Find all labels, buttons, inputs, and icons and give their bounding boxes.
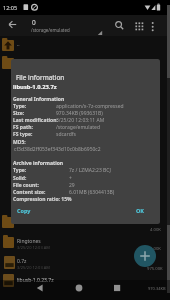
button[interactable] — [110, 17, 127, 34]
staticText: 0.7z — [17, 258, 27, 265]
staticText: Compression ratio: 15% — [13, 196, 72, 203]
staticText: cf3d38d2ff053ef343d10c0b8b6950c2 — [14, 146, 101, 153]
staticText: 29 — [69, 182, 75, 189]
staticText: 3/25/20 12:03:11 AM — [56, 117, 105, 124]
staticText: + — [69, 175, 72, 182]
staticText: Copy — [17, 207, 31, 214]
staticText: Last modification: — [13, 117, 58, 124]
staticText: 12:05 — [3, 4, 18, 11]
staticText: libusb-1.0.23.7z — [17, 277, 54, 284]
staticText: FS type: — [13, 131, 33, 138]
staticText: 0 — [32, 18, 36, 27]
button[interactable] — [0, 251, 163, 271]
staticText: File information — [16, 73, 65, 82]
staticText: Ringtones — [17, 238, 41, 245]
staticText: 3/25/20 12:03 AM — [17, 245, 50, 250]
staticText: .. — [17, 41, 20, 48]
staticText: /storage/emulated — [56, 124, 100, 131]
staticText: Content size: — [13, 189, 46, 196]
button[interactable] — [109, 282, 125, 295]
staticText: 6.01MB (6304413B) — [69, 189, 115, 196]
button[interactable] — [24, 16, 104, 35]
staticText: Solid: — [13, 175, 27, 182]
button[interactable] — [0, 36, 163, 56]
button[interactable] — [129, 17, 146, 34]
button[interactable] — [134, 245, 156, 267]
staticText: FS path: — [13, 124, 33, 131]
staticText: File count: — [13, 182, 39, 189]
staticText: General Information — [13, 96, 65, 103]
button[interactable] — [132, 207, 150, 221]
button[interactable] — [0, 231, 163, 251]
staticText: Size: — [13, 110, 25, 117]
staticText: 975.00K — [147, 266, 163, 272]
staticText: MD5: — [13, 139, 26, 146]
staticText: libusb-1.0.23.7z — [13, 83, 57, 91]
button[interactable] — [146, 17, 160, 34]
button[interactable] — [71, 282, 87, 295]
button[interactable] — [0, 271, 163, 291]
staticText: sdcardfs — [56, 131, 76, 138]
staticText: 3/25/20 12:03 AM — [17, 265, 50, 270]
staticText: Archive information — [13, 160, 64, 167]
staticText: 7z / LZMA2:23 BCJ — [69, 167, 111, 174]
staticText: OK — [136, 207, 145, 214]
staticText: 970.34KB — [148, 286, 166, 291]
staticText: Type: — [13, 167, 27, 174]
button[interactable] — [32, 282, 48, 295]
staticText: Type: — [13, 103, 27, 110]
staticText: 2.00K — [150, 246, 161, 252]
staticText: /storage/emulated — [31, 27, 70, 33]
staticText: application/x-7z-compressed — [56, 103, 124, 110]
staticText: 970.34KB (993631B) — [56, 110, 103, 117]
staticText: 4.00K — [150, 227, 161, 233]
button[interactable] — [4, 18, 20, 32]
button[interactable] — [13, 207, 35, 221]
